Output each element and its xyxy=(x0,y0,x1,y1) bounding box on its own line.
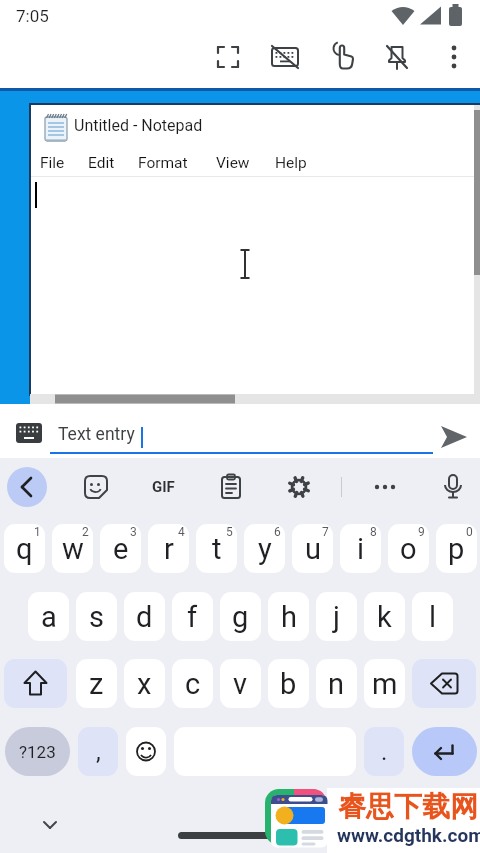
staticText: 6 xyxy=(274,525,281,539)
staticText: 2 xyxy=(82,525,89,539)
staticText: o xyxy=(400,532,417,566)
staticText: 0 xyxy=(466,525,473,539)
button[interactable]: GIF xyxy=(143,467,183,507)
button[interactable]: p xyxy=(436,524,477,573)
staticText: www.cdgthk.com xyxy=(337,824,480,846)
staticText: Edit xyxy=(88,154,115,172)
staticText: Format xyxy=(138,154,188,172)
staticText: GIF xyxy=(152,478,175,496)
staticText: File xyxy=(40,154,65,172)
button[interactable] xyxy=(365,467,405,507)
staticText: l xyxy=(429,600,437,634)
staticText: b xyxy=(280,667,297,701)
button[interactable]: h xyxy=(268,592,309,641)
staticText: c xyxy=(185,667,201,701)
staticText: 9 xyxy=(418,525,425,539)
staticText: s xyxy=(89,600,104,634)
button[interactable] xyxy=(211,467,251,507)
button[interactable] xyxy=(412,659,476,708)
button[interactable]: o xyxy=(388,524,429,573)
staticText: 1 xyxy=(34,525,41,539)
staticText: w xyxy=(62,532,84,566)
staticText: ?123 xyxy=(19,742,56,762)
button[interactable]: q xyxy=(4,524,45,573)
button[interactable] xyxy=(7,467,47,507)
staticText: g xyxy=(232,600,249,634)
button[interactable] xyxy=(262,35,308,80)
button[interactable]: . xyxy=(364,727,404,776)
staticText: 7 xyxy=(322,525,329,539)
button[interactable]: ?123 xyxy=(5,727,70,776)
staticText: i xyxy=(357,532,365,566)
staticText: f xyxy=(187,600,198,634)
button[interactable] xyxy=(30,805,70,845)
staticText: v xyxy=(233,667,248,701)
staticText: k xyxy=(377,600,392,634)
staticText: u xyxy=(305,532,321,566)
button[interactable]: e xyxy=(100,524,141,573)
button[interactable]: c xyxy=(172,659,213,708)
button[interactable]: d xyxy=(124,592,165,641)
button[interactable] xyxy=(374,35,420,80)
button[interactable] xyxy=(0,404,440,458)
button[interactable] xyxy=(430,415,478,458)
staticText: . xyxy=(381,738,388,766)
staticText: q xyxy=(16,532,33,566)
button[interactable] xyxy=(318,35,364,80)
button[interactable]: r xyxy=(148,524,189,573)
staticText: , xyxy=(96,738,101,766)
staticText: 4 xyxy=(178,525,185,539)
button[interactable] xyxy=(76,467,116,507)
staticText: 睿思下载网 xyxy=(338,789,478,824)
staticText: Text entry xyxy=(58,424,135,445)
button[interactable]: x xyxy=(124,659,165,708)
staticText: j xyxy=(333,600,340,634)
button[interactable] xyxy=(412,727,477,776)
button[interactable] xyxy=(432,35,476,80)
button[interactable] xyxy=(279,467,319,507)
button[interactable]: v xyxy=(220,659,261,708)
staticText: d xyxy=(136,600,153,634)
staticText: t xyxy=(212,532,222,566)
button[interactable]: w xyxy=(52,524,93,573)
staticText: h xyxy=(281,600,297,634)
button[interactable]: n xyxy=(316,659,357,708)
button[interactable]: y xyxy=(244,524,285,573)
button[interactable]: u xyxy=(292,524,333,573)
staticText: Untitled - Notepad xyxy=(74,116,203,135)
staticText: n xyxy=(328,667,345,701)
staticText: 7:05 xyxy=(16,6,49,26)
button[interactable]: f xyxy=(172,592,213,641)
staticText: Help xyxy=(275,154,307,172)
staticText: 5 xyxy=(226,525,233,539)
button[interactable]: m xyxy=(364,659,405,708)
button[interactable] xyxy=(126,727,166,776)
staticText: View xyxy=(216,154,250,172)
staticText: 8 xyxy=(370,525,377,539)
button[interactable]: s xyxy=(76,592,117,641)
button[interactable]: l xyxy=(412,592,453,641)
staticText: x xyxy=(137,667,152,701)
button[interactable]: g xyxy=(220,592,261,641)
button[interactable]: a xyxy=(28,592,69,641)
staticText: a xyxy=(41,600,57,634)
button[interactable]: , xyxy=(78,727,118,776)
button[interactable]: k xyxy=(364,592,405,641)
staticText: e xyxy=(113,532,129,566)
staticText: p xyxy=(448,532,465,566)
staticText: y xyxy=(258,532,272,566)
button[interactable]: i xyxy=(340,524,381,573)
button[interactable]: j xyxy=(316,592,357,641)
button[interactable] xyxy=(4,659,67,708)
button[interactable] xyxy=(205,35,251,80)
staticText: z xyxy=(89,667,104,701)
button[interactable]: z xyxy=(76,659,117,708)
staticText: m xyxy=(372,667,398,701)
staticText: 3 xyxy=(130,525,137,539)
button[interactable] xyxy=(433,467,473,507)
button[interactable]: b xyxy=(268,659,309,708)
staticText: r xyxy=(164,532,174,566)
button[interactable]: t xyxy=(196,524,237,573)
